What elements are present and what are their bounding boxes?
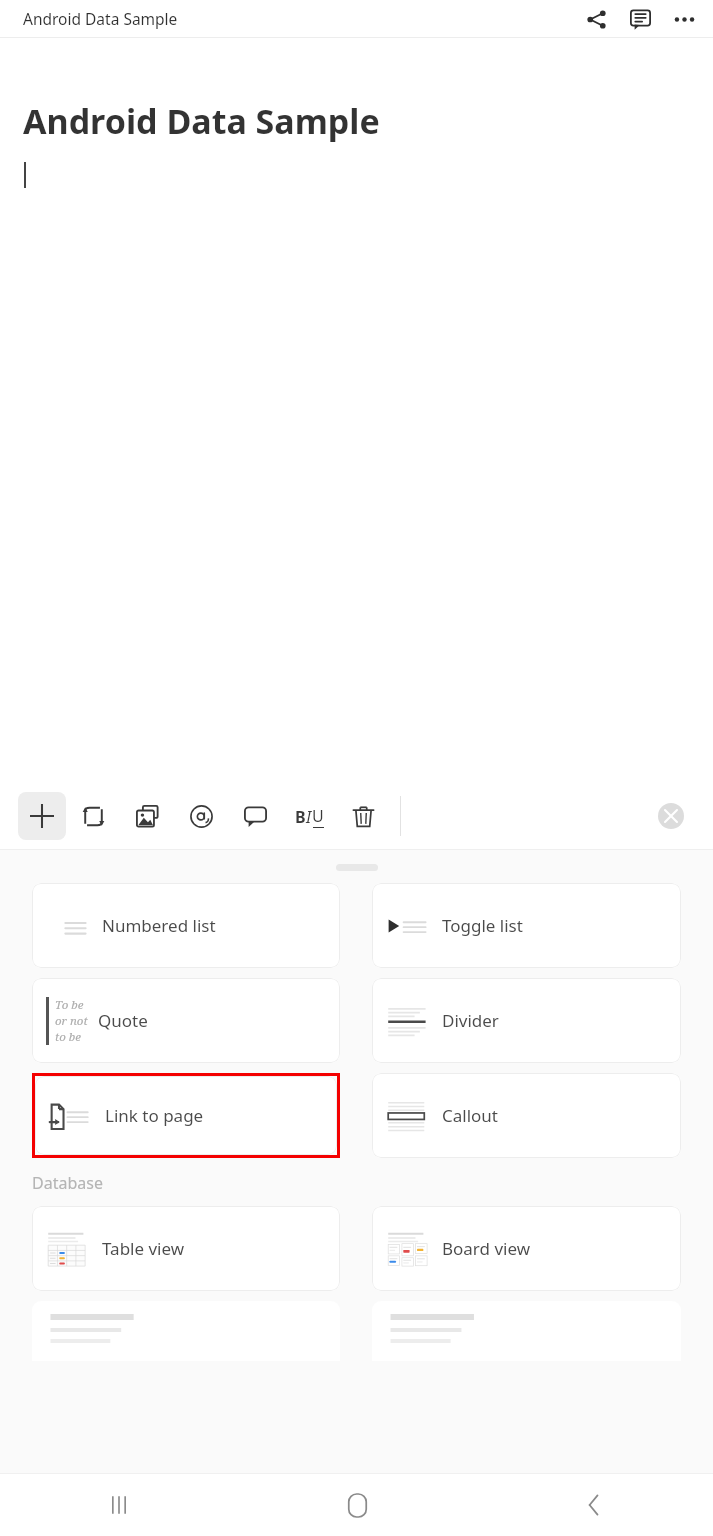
staticText: Numbered list [102, 914, 216, 937]
staticText: Callout [442, 1104, 498, 1127]
staticText: B [295, 806, 306, 828]
button[interactable]: Comments [623, 2, 657, 36]
staticText: Android Data Sample [23, 98, 380, 144]
button[interactable]: To be [32, 978, 340, 1063]
staticText: Quote [98, 1009, 148, 1032]
button[interactable]: Insert image [120, 792, 174, 840]
staticText: to be [55, 1029, 81, 1045]
button[interactable]: Add block [18, 792, 66, 840]
button[interactable]: Table view [32, 1206, 340, 1291]
staticText: Table view [102, 1237, 185, 1260]
staticText: Divider [442, 1009, 499, 1032]
button[interactable]: Link to page [35, 1076, 337, 1155]
staticText: U [312, 805, 324, 827]
button[interactable]: Delete block [336, 792, 390, 840]
staticText: Board view [442, 1237, 531, 1260]
button[interactable] [32, 1301, 340, 1361]
button[interactable]: Comment [228, 792, 282, 840]
button[interactable]: Callout [372, 1073, 681, 1158]
button[interactable]: Home [326, 1474, 388, 1536]
button[interactable]: More options [667, 2, 701, 36]
button[interactable]: Numbered list [32, 883, 340, 968]
staticText: I [306, 806, 312, 828]
button[interactable]: Divider [372, 978, 681, 1063]
button[interactable]: Back [563, 1474, 625, 1536]
button[interactable]: Board view [372, 1206, 681, 1291]
staticText: Toggle list [442, 914, 523, 937]
staticText: Link to page [105, 1104, 204, 1127]
button[interactable]: Recents [88, 1474, 150, 1536]
staticText: To be [55, 997, 84, 1013]
button[interactable]: Close [649, 794, 693, 838]
button[interactable]: Mention [174, 792, 228, 840]
button[interactable]: Move block [66, 792, 120, 840]
button[interactable]: Toggle list [372, 883, 681, 968]
button[interactable]: Share [579, 2, 613, 36]
staticText: Android Data Sample [23, 8, 178, 29]
button[interactable]: Text format [282, 792, 336, 840]
staticText: Database [32, 1172, 103, 1194]
staticText: or not [55, 1013, 88, 1029]
button[interactable] [372, 1301, 681, 1361]
